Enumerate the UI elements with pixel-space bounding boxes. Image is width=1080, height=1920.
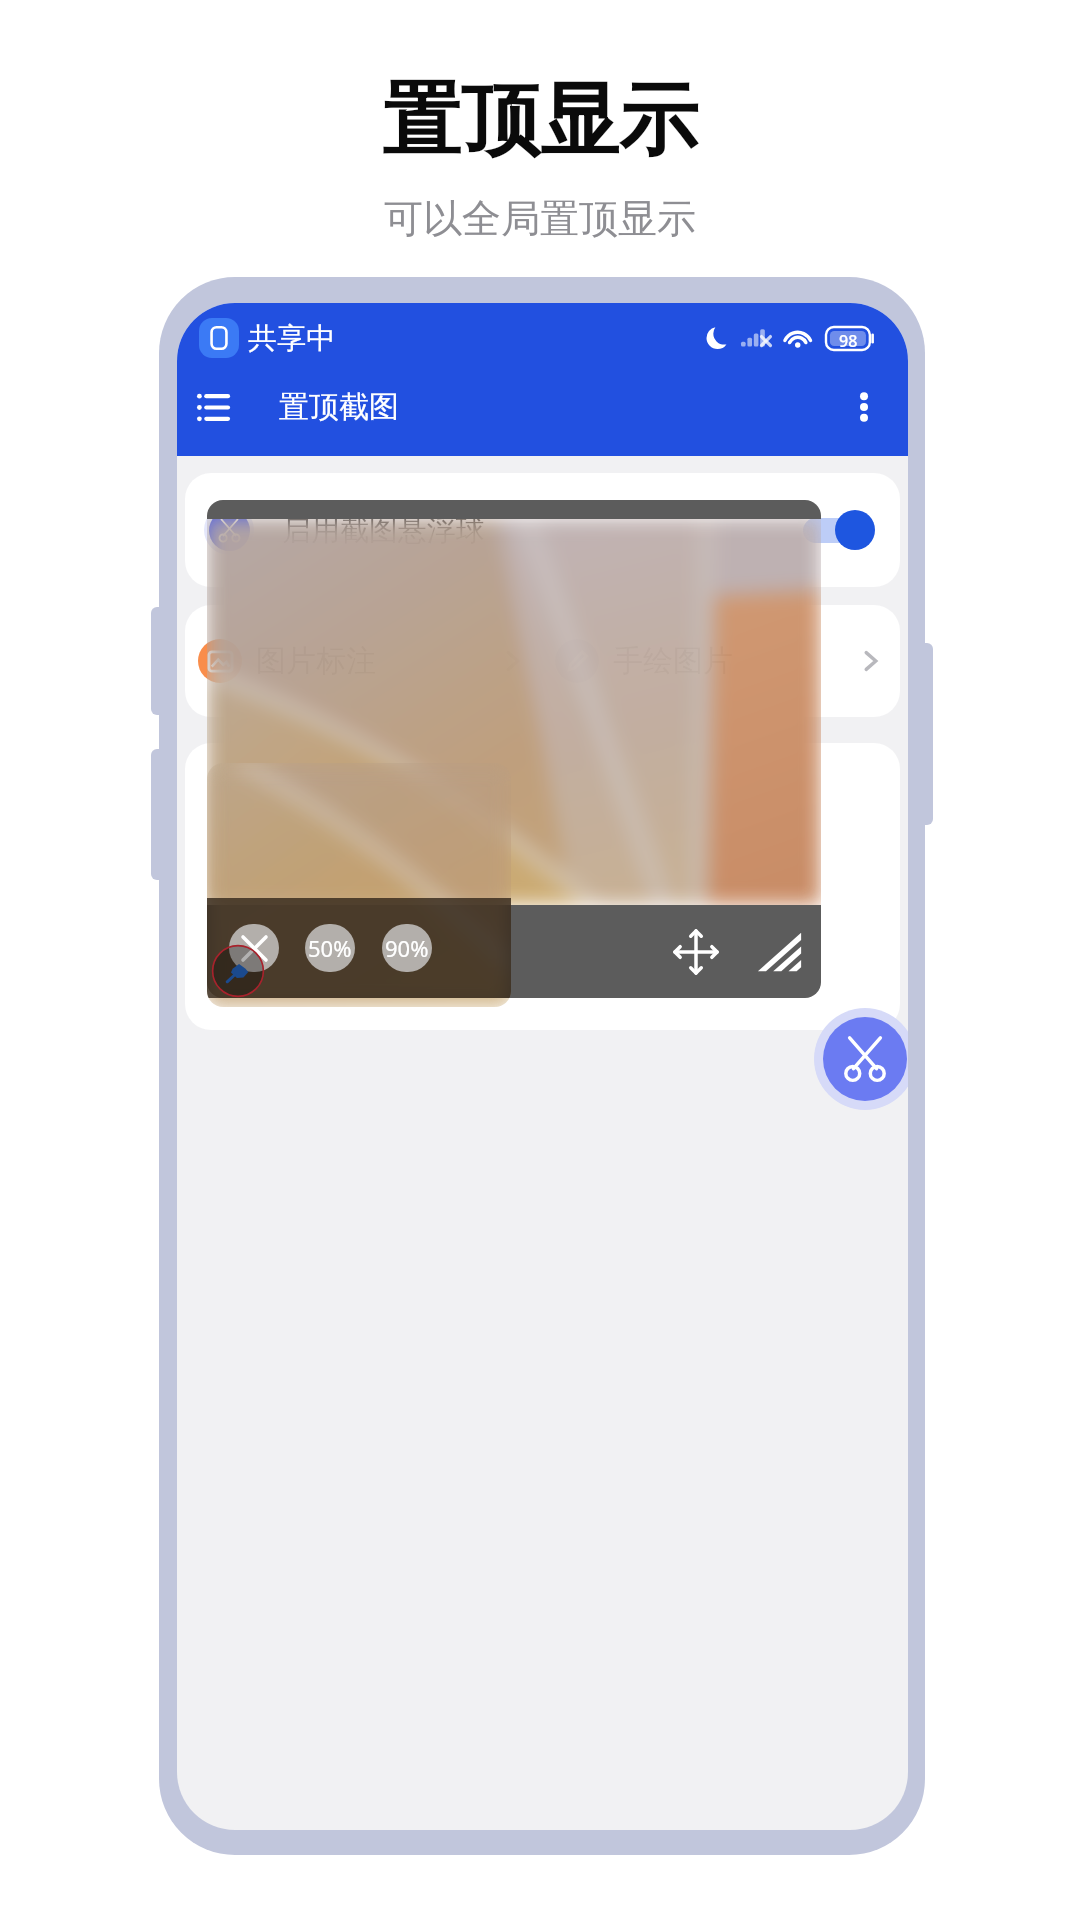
button[interactable]: Resize window <box>754 927 804 977</box>
button[interactable]: 手绘图片 <box>542 605 900 717</box>
staticText: 98 <box>839 330 858 347</box>
button[interactable]: 启用截图悬浮球 <box>185 473 900 587</box>
button[interactable]: Move window <box>668 924 724 980</box>
button[interactable]: Close <box>229 924 279 972</box>
button[interactable]: 50 percent <box>305 924 355 972</box>
staticText: 可以全局置顶显示 <box>384 194 696 243</box>
button[interactable]: Menu <box>181 376 243 438</box>
staticText: 置顶截图 <box>279 388 399 426</box>
staticText: 50% <box>308 933 352 963</box>
staticText: 手绘图片 <box>613 642 733 680</box>
button[interactable]: 90 percent <box>382 924 432 972</box>
button[interactable]: New screenshot <box>823 1017 907 1101</box>
staticText: 置顶显示 <box>382 71 698 171</box>
staticText: 启用截图悬浮球 <box>282 512 485 549</box>
staticText: 90% <box>385 933 429 963</box>
staticText: 共享中 <box>248 320 335 357</box>
button[interactable]: More options <box>836 379 892 435</box>
button[interactable]: 图片标注 <box>185 605 542 717</box>
staticText: 图片标注 <box>256 642 376 680</box>
